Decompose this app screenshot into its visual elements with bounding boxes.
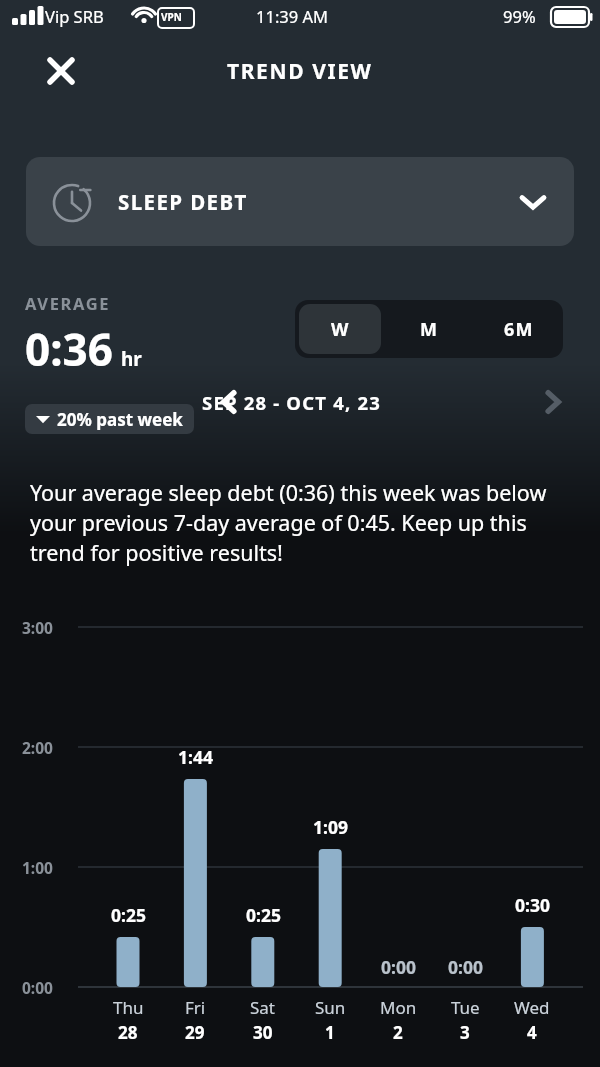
staticText: Fri <box>185 996 206 1019</box>
staticText: 3 <box>460 1021 470 1044</box>
staticText: TREND VIEW <box>227 57 373 86</box>
staticText: W <box>331 317 350 342</box>
button[interactable]: 6M <box>478 304 559 354</box>
button[interactable]: W <box>299 304 381 354</box>
staticText: 29 <box>185 1021 205 1044</box>
staticText: AVERAGE <box>25 292 111 314</box>
button[interactable]: M <box>389 304 470 354</box>
staticText: Thu <box>113 996 144 1019</box>
staticText: VPN <box>161 10 182 24</box>
staticText: 1:09 <box>313 815 348 839</box>
staticText: SEP 28 - OCT 4, 23 <box>202 390 381 415</box>
staticText: Tue <box>451 996 480 1019</box>
staticText: 0:25 <box>246 903 281 927</box>
button[interactable]: Close <box>37 47 85 95</box>
staticText: 0:00 <box>381 955 416 979</box>
staticText: 20% past week <box>57 408 183 431</box>
staticText: 30 <box>253 1021 273 1044</box>
staticText: Sun <box>315 996 346 1019</box>
staticText: 2:00 <box>22 737 53 758</box>
staticText: 28 <box>118 1021 138 1044</box>
staticText: Your average sleep debt (0:36) this week… <box>30 478 570 567</box>
staticText: Wed <box>514 996 550 1019</box>
staticText: 99% <box>503 5 536 27</box>
staticText: 2 <box>393 1021 403 1044</box>
staticText: 11:39 AM <box>256 5 328 27</box>
staticText: 0:36 <box>25 319 113 379</box>
staticText: Sat <box>250 996 276 1019</box>
staticText: 1:44 <box>178 745 213 769</box>
staticText: Vip SRB <box>45 5 104 27</box>
staticText: 3:00 <box>22 617 53 638</box>
staticText: 0:25 <box>111 903 146 927</box>
staticText: Mon <box>380 996 417 1019</box>
staticText: 1 <box>325 1021 335 1044</box>
staticText: 4 <box>527 1021 537 1044</box>
staticText: M <box>420 317 439 342</box>
button[interactable]: Previous week <box>206 379 252 425</box>
staticText: 1:00 <box>22 857 53 878</box>
staticText: 0:00 <box>22 977 53 998</box>
staticText: 0:00 <box>448 955 483 979</box>
button[interactable]: 20% past week <box>25 404 194 434</box>
staticText: SLEEP DEBT <box>118 188 248 216</box>
staticText: 6M <box>504 317 534 342</box>
button[interactable]: Next week <box>530 379 576 425</box>
button[interactable]: SLEEP DEBT <box>26 157 574 246</box>
staticText: hr <box>121 346 142 372</box>
staticText: 0:30 <box>515 893 550 917</box>
